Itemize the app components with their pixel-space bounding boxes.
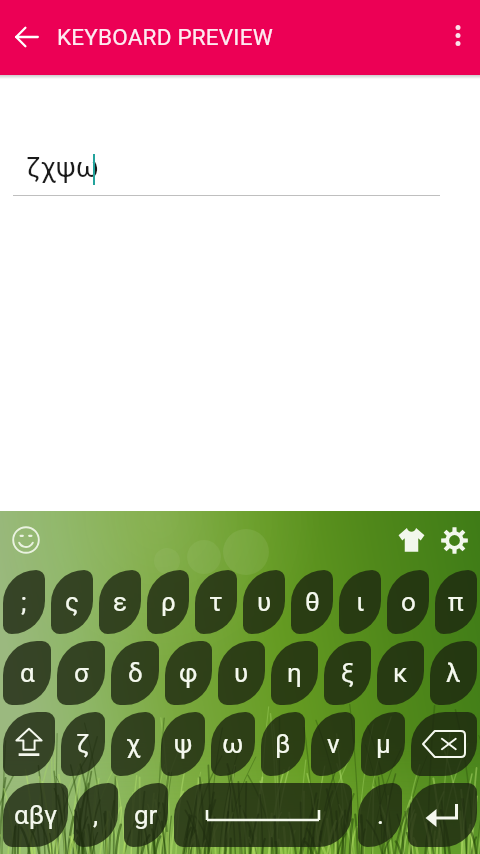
button[interactable]: ο: [387, 570, 429, 634]
staticText: ξ: [341, 658, 354, 688]
staticText: ι: [356, 587, 365, 617]
staticText: ω: [222, 729, 244, 759]
staticText: ε: [113, 587, 128, 617]
button[interactable]: ψ: [161, 712, 205, 776]
button[interactable]: ,: [74, 783, 118, 847]
button[interactable]: ζ: [61, 712, 105, 776]
button[interactable]: υ: [243, 570, 285, 634]
staticText: ν: [327, 729, 340, 759]
button[interactable]: αβγ: [3, 783, 68, 847]
staticText: ο: [401, 587, 416, 617]
staticText: μ: [376, 729, 391, 759]
button[interactable]: κ: [377, 641, 424, 705]
staticText: α: [20, 658, 35, 688]
staticText: π: [448, 587, 464, 617]
staticText: τ: [209, 587, 223, 617]
button[interactable]: π: [435, 570, 477, 634]
staticText: ς: [65, 587, 79, 617]
button[interactable]: Themes: [391, 520, 431, 560]
button[interactable]: δ: [111, 641, 159, 705]
staticText: gr: [134, 800, 158, 830]
staticText: ζ: [76, 729, 90, 759]
button[interactable]: β: [261, 712, 305, 776]
staticText: ,: [93, 800, 99, 830]
button[interactable]: ;: [3, 570, 45, 634]
staticText: .: [377, 800, 384, 830]
button[interactable]: Backspace: [411, 712, 477, 776]
button[interactable]: σ: [57, 641, 105, 705]
button[interactable]: φ: [165, 641, 212, 705]
staticText: λ: [446, 658, 461, 688]
button[interactable]: χ: [111, 712, 155, 776]
button[interactable]: θ: [291, 570, 333, 634]
button[interactable]: Emoji: [6, 520, 46, 560]
staticText: ρ: [161, 587, 176, 617]
staticText: KEYBOARD PREVIEW: [57, 24, 273, 50]
staticText: υ: [257, 587, 272, 617]
button[interactable]: Shift: [3, 712, 55, 776]
button[interactable]: ς: [51, 570, 93, 634]
staticText: β: [275, 729, 291, 759]
button[interactable]: gr: [124, 783, 168, 847]
button[interactable]: ε: [99, 570, 141, 634]
staticText: η: [287, 658, 302, 688]
button[interactable]: More options: [435, 13, 480, 59]
staticText: κ: [393, 658, 408, 688]
button[interactable]: μ: [361, 712, 405, 776]
button[interactable]: ι: [339, 570, 381, 634]
button[interactable]: Space: [174, 783, 352, 847]
button[interactable]: α: [3, 641, 51, 705]
button[interactable]: ξ: [324, 641, 371, 705]
button[interactable]: η: [271, 641, 318, 705]
button[interactable]: υ: [218, 641, 265, 705]
button[interactable]: ω: [211, 712, 255, 776]
staticText: θ: [305, 587, 320, 617]
staticText: υ: [234, 658, 249, 688]
button[interactable]: ρ: [147, 570, 189, 634]
button[interactable]: .: [358, 783, 402, 847]
button[interactable]: τ: [195, 570, 237, 634]
staticText: ;: [21, 587, 27, 617]
button[interactable]: Back: [3, 13, 51, 61]
staticText: φ: [179, 658, 198, 688]
button[interactable]: Enter: [408, 783, 477, 847]
staticText: σ: [74, 658, 89, 688]
button[interactable]: λ: [430, 641, 477, 705]
staticText: χ: [126, 729, 141, 759]
staticText: δ: [128, 658, 143, 688]
button[interactable]: ν: [311, 712, 355, 776]
staticText: ζχψω: [26, 151, 99, 184]
staticText: ψ: [174, 729, 193, 759]
button[interactable]: Settings: [434, 520, 474, 560]
staticText: αβγ: [14, 800, 58, 830]
